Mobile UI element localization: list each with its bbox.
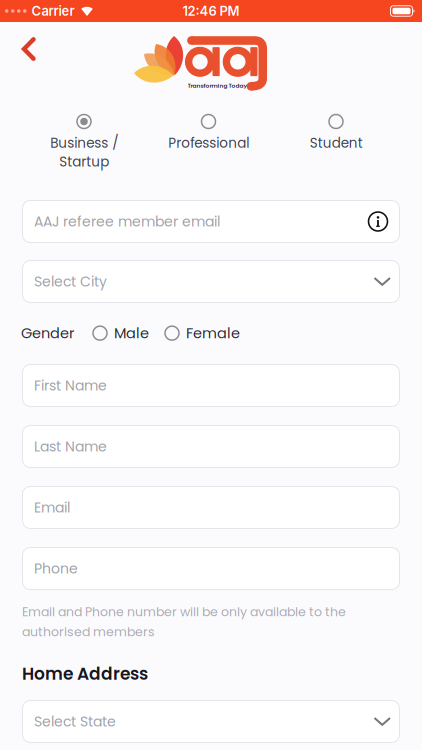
staticText: Phone: [34, 559, 78, 578]
staticText: 12:46 PM: [182, 3, 239, 19]
staticText: Professional: [168, 133, 249, 152]
button[interactable]: Select City: [22, 260, 400, 303]
button[interactable]: First Name: [22, 364, 400, 407]
staticText: Select State: [34, 712, 116, 731]
button[interactable]: Professional: [143, 113, 273, 152]
button[interactable]: Student: [271, 113, 401, 152]
button[interactable]: Back: [9, 34, 43, 66]
staticText: Select City: [34, 272, 107, 291]
staticText: First Name: [34, 376, 107, 395]
button[interactable]: AAJ referee member email: [22, 200, 400, 243]
button[interactable]: Phone: [22, 547, 400, 590]
staticText: Email and Phone number will be only avai…: [22, 603, 346, 640]
staticText: Gender: [21, 323, 74, 343]
staticText: Female: [186, 323, 240, 343]
button[interactable]: Referee info: [367, 210, 389, 232]
staticText: Last Name: [34, 437, 107, 456]
button[interactable]: Email: [22, 486, 400, 529]
staticText: Home Address: [22, 662, 148, 686]
staticText: Student: [309, 133, 362, 152]
staticText: AAJ referee member email: [34, 212, 220, 231]
staticText: Transforming Today: [187, 81, 247, 90]
button[interactable]: Business / Startup: [19, 113, 149, 171]
button[interactable]: Last Name: [22, 425, 400, 468]
button[interactable]: Select State: [22, 700, 400, 743]
button[interactable]: Female: [164, 323, 240, 343]
staticText: Business / Startup: [50, 133, 118, 171]
button[interactable]: Male: [92, 323, 149, 343]
staticText: Male: [114, 323, 149, 343]
staticText: Email: [34, 498, 70, 517]
staticText: Carrier: [31, 3, 74, 19]
